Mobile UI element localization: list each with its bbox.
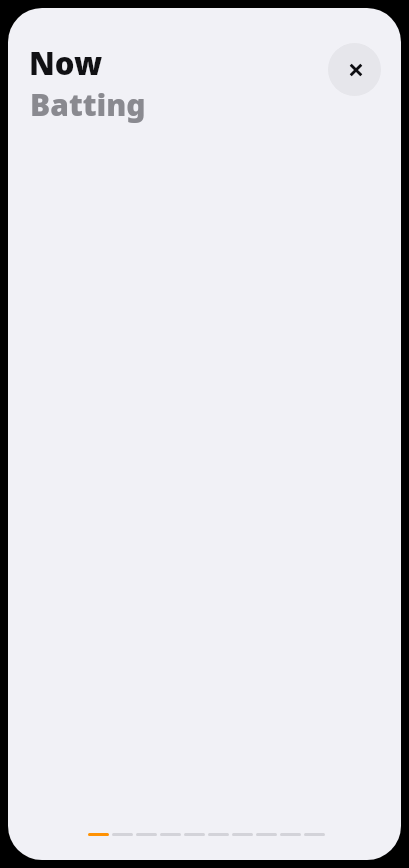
button[interactable]: Over 3 xyxy=(136,833,157,836)
button[interactable]: Over 4 xyxy=(160,833,181,836)
button[interactable]: Over 5 xyxy=(184,833,205,836)
button[interactable]: Over 6 xyxy=(208,833,229,836)
button[interactable]: Over 8 xyxy=(256,833,277,836)
button[interactable]: Over 10 xyxy=(304,833,325,836)
button[interactable]: Over 9 xyxy=(280,833,301,836)
button[interactable]: Over 7 xyxy=(232,833,253,836)
button[interactable]: Over 1 xyxy=(88,833,109,836)
button[interactable]: Close xyxy=(328,43,381,96)
button[interactable]: Over 2 xyxy=(112,833,133,836)
staticText: Now xyxy=(29,42,103,84)
staticText: Batting xyxy=(30,84,146,125)
